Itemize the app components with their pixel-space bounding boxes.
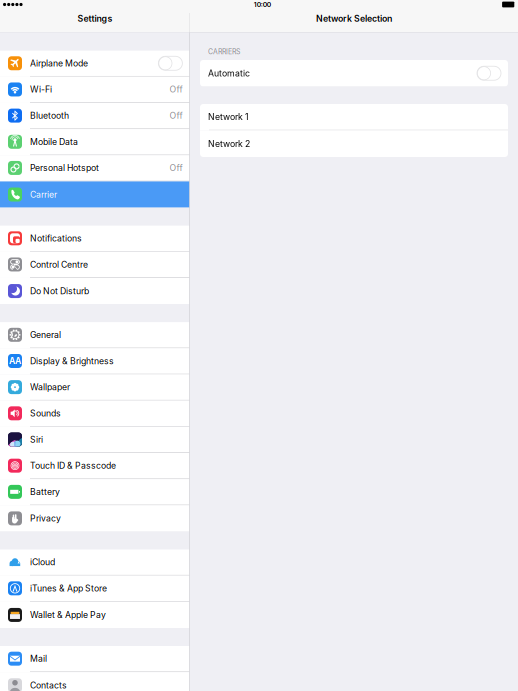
button[interactable]: Privacy (0, 505, 189, 531)
button[interactable]: Do Not Disturb (0, 278, 189, 304)
button[interactable]: Siri (0, 427, 189, 453)
staticText: Airplane Mode (30, 58, 88, 68)
button[interactable]: iTunes & App Store (0, 576, 189, 602)
staticText: Mail (30, 653, 47, 664)
staticText: Control Centre (30, 259, 88, 270)
button[interactable]: iCloud (0, 549, 189, 576)
staticText: Settings (77, 13, 112, 24)
staticText: Network 2 (208, 138, 250, 149)
staticText: Bluetooth (30, 110, 69, 121)
staticText: iCloud (30, 557, 55, 567)
staticText: CARRIERS (208, 48, 240, 56)
staticText: Battery (30, 487, 60, 497)
staticText: General (30, 330, 61, 340)
button[interactable]: Battery (0, 479, 189, 505)
button[interactable]: Carrier (0, 181, 189, 208)
button[interactable]: Airplane Mode (0, 51, 189, 77)
button[interactable]: Sounds (0, 401, 189, 427)
staticText: Off (169, 84, 182, 95)
button[interactable]: Mobile Data (0, 129, 189, 155)
staticText: AA (9, 356, 21, 366)
button[interactable]: Wallpaper (0, 374, 189, 401)
staticText: Do Not Disturb (30, 286, 89, 296)
staticText: Contacts (30, 680, 67, 690)
staticText: Notifications (30, 233, 82, 244)
staticText: iTunes & App Store (30, 583, 107, 594)
button[interactable]: Control Centre (0, 252, 189, 278)
staticText: Siri (30, 434, 43, 445)
staticText: Mobile Data (30, 137, 78, 147)
staticText: Display & Brightness (30, 356, 114, 366)
button[interactable]: Wallet & Apple Pay (0, 602, 189, 628)
staticText: Touch ID & Passcode (30, 460, 116, 471)
button[interactable]: Bluetooth (0, 103, 189, 129)
staticText: Off (169, 163, 182, 173)
staticText: Off (169, 110, 182, 121)
button[interactable]: AA (0, 348, 189, 374)
button[interactable]: Network 2 (200, 130, 508, 157)
staticText: Sounds (30, 408, 61, 419)
staticText: 10:00 (254, 0, 271, 9)
staticText: Wallpaper (30, 382, 70, 392)
button[interactable]: Contacts (0, 672, 189, 691)
button[interactable]: Automatic (200, 60, 508, 86)
button[interactable]: Personal Hotspot (0, 155, 189, 181)
button[interactable]: General (0, 322, 189, 348)
staticText: Automatic (208, 68, 250, 78)
button[interactable]: Network 1 (200, 104, 508, 130)
staticText: Personal Hotspot (30, 163, 99, 173)
button[interactable]: Touch ID & Passcode (0, 453, 189, 479)
staticText: Privacy (30, 513, 61, 524)
staticText: Network Selection (316, 13, 392, 24)
staticText: Wallet & Apple Pay (30, 610, 106, 620)
button[interactable]: Notifications (0, 226, 189, 252)
staticText: Carrier (30, 189, 57, 200)
button[interactable]: Mail (0, 646, 189, 672)
staticText: Network 1 (208, 112, 249, 122)
button[interactable]: Wi-Fi (0, 77, 189, 103)
staticText: Wi-Fi (30, 84, 52, 95)
